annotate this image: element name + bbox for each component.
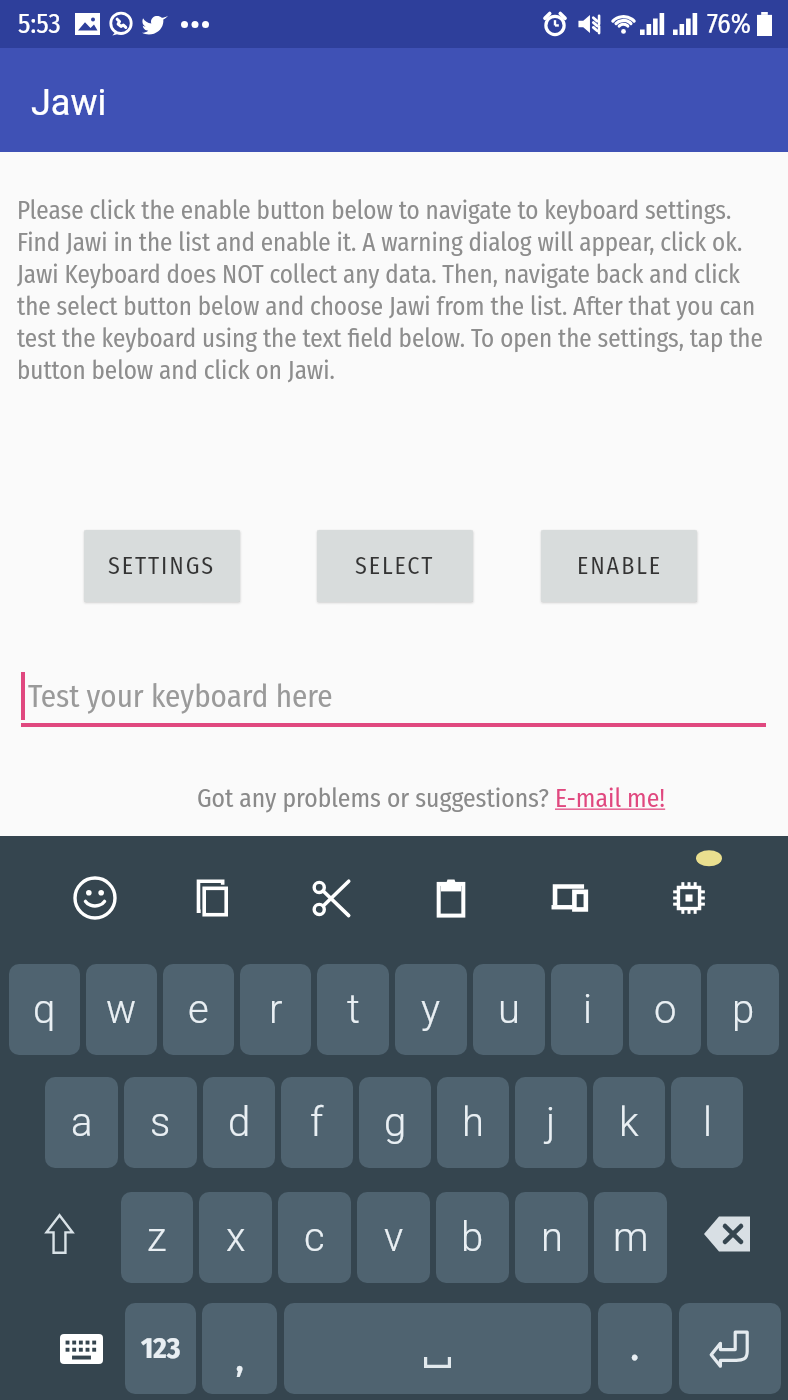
button[interactable]: f: [281, 1077, 353, 1168]
button[interactable]: k: [593, 1077, 665, 1168]
staticText: SETTINGS: [108, 552, 216, 581]
button[interactable]: ENABLE: [541, 530, 697, 602]
button[interactable]: Emoji: [36, 836, 154, 960]
staticText: x: [226, 1214, 246, 1261]
staticText: g: [384, 1099, 407, 1146]
staticText: Please click the enable button below to …: [17, 196, 774, 385]
button[interactable]: l: [671, 1077, 743, 1168]
staticText: Jawi: [31, 82, 107, 124]
staticText: s: [150, 1099, 171, 1146]
button[interactable]: Keyboard settings: [629, 836, 748, 960]
button[interactable]: q: [9, 964, 80, 1055]
button[interactable]: c: [278, 1192, 351, 1283]
button[interactable]: Backspace: [670, 1192, 788, 1283]
staticText: y: [421, 986, 441, 1033]
button[interactable]: ,: [202, 1303, 277, 1394]
button[interactable]: e: [163, 964, 234, 1055]
staticText: 123: [141, 1331, 181, 1366]
button[interactable]: z: [121, 1192, 193, 1283]
button[interactable]: t: [317, 964, 389, 1055]
button[interactable]: Shift: [0, 1192, 118, 1283]
button[interactable]: u: [473, 964, 545, 1055]
staticText: e: [188, 986, 209, 1033]
button[interactable]: d: [203, 1077, 275, 1168]
button[interactable]: o: [629, 964, 701, 1055]
button[interactable]: b: [436, 1192, 509, 1283]
button[interactable]: E-mail me!: [555, 783, 666, 814]
staticText: .: [631, 1330, 639, 1368]
button[interactable]: r: [240, 964, 311, 1055]
button[interactable]: x: [199, 1192, 272, 1283]
button[interactable]: Copy: [154, 836, 272, 960]
staticText: k: [619, 1099, 639, 1146]
staticText: j: [546, 1099, 556, 1146]
button[interactable]: g: [359, 1077, 431, 1168]
button[interactable]: s: [124, 1077, 197, 1168]
staticText: i: [583, 986, 592, 1033]
staticText: n: [541, 1214, 563, 1261]
button[interactable]: y: [395, 964, 467, 1055]
button[interactable]: Devices: [510, 836, 629, 960]
button[interactable]: h: [437, 1077, 509, 1168]
staticText: z: [147, 1214, 167, 1261]
staticText: ,: [236, 1341, 244, 1379]
button[interactable]: n: [515, 1192, 588, 1283]
staticText: Got any problems or suggestions?: [197, 783, 555, 814]
staticText: m: [613, 1214, 649, 1261]
staticText: SELECT: [355, 552, 435, 581]
staticText: f: [310, 1099, 324, 1146]
staticText: u: [498, 986, 520, 1033]
staticText: r: [269, 986, 283, 1033]
button[interactable]: v: [357, 1192, 430, 1283]
staticText: q: [33, 986, 56, 1033]
staticText: o: [654, 986, 677, 1033]
button[interactable]: SELECT: [317, 530, 473, 602]
button[interactable]: w: [86, 964, 157, 1055]
button[interactable]: Space: [284, 1303, 591, 1394]
button[interactable]: Cut: [272, 836, 391, 960]
staticText: t: [347, 986, 360, 1033]
button[interactable]: a: [45, 1077, 118, 1168]
button[interactable]: Paste: [391, 836, 510, 960]
staticText: v: [384, 1214, 404, 1261]
button[interactable]: .: [598, 1303, 672, 1394]
staticText: c: [304, 1214, 325, 1261]
button[interactable]: Enter: [679, 1303, 781, 1394]
staticText: Test your keyboard here: [28, 678, 333, 715]
staticText: 5:53: [18, 8, 61, 40]
staticText: w: [106, 986, 137, 1033]
button[interactable]: m: [594, 1192, 667, 1283]
button[interactable]: SETTINGS: [84, 530, 240, 602]
staticText: p: [732, 986, 755, 1033]
staticText: ENABLE: [577, 552, 662, 581]
button[interactable]: Change keyboard: [40, 1303, 122, 1394]
staticText: d: [228, 1099, 251, 1146]
staticText: b: [461, 1214, 484, 1261]
button[interactable]: p: [707, 964, 779, 1055]
staticText: l: [703, 1099, 712, 1146]
staticText: a: [71, 1099, 93, 1146]
staticText: h: [462, 1099, 484, 1146]
button[interactable]: 123: [125, 1303, 196, 1394]
staticText: 76%: [707, 8, 751, 40]
button[interactable]: j: [515, 1077, 587, 1168]
button[interactable]: i: [551, 964, 623, 1055]
